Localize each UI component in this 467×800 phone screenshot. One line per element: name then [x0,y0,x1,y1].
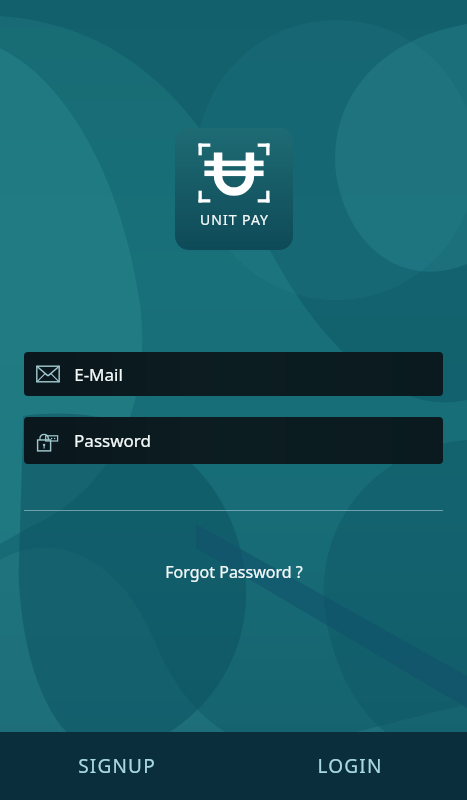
staticText: Password [74,429,151,452]
button[interactable]: SIGNUP [0,732,233,800]
button[interactable]: LOGIN [233,732,467,800]
staticText: Forgot Password ? [165,561,303,583]
button[interactable]: Unit Pay logo [175,128,293,250]
staticText: E-Mail [74,363,123,386]
staticText: LOGIN [317,753,383,779]
button[interactable]: E-Mail [24,352,443,396]
button[interactable]: Password [24,417,443,464]
staticText: UNIT PAY [200,210,269,229]
button[interactable]: Forgot Password ? [0,554,467,590]
staticText: SIGNUP [78,753,156,779]
